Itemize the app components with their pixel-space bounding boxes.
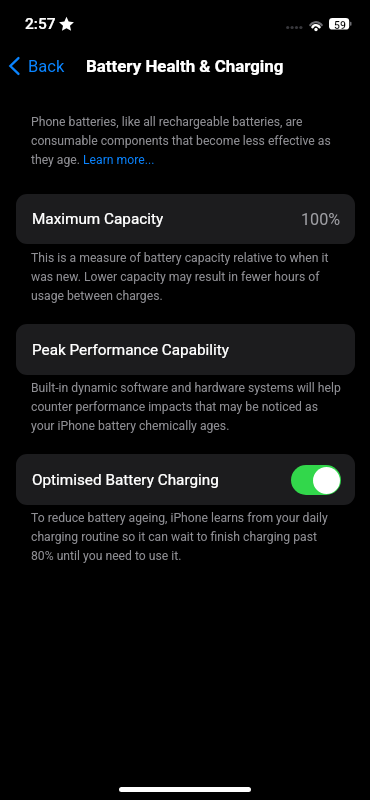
button[interactable]: Maximum Capacity <box>16 194 355 244</box>
staticText: Built-in dynamic software and hardware s… <box>31 377 342 434</box>
staticText: This is a measure of battery capacity re… <box>31 247 342 304</box>
staticText: Battery Health & Charging <box>86 56 284 76</box>
staticText: Optimised Battery Charging <box>32 471 219 489</box>
staticText: 2:57 <box>25 15 56 33</box>
button[interactable]: Back <box>3 49 71 83</box>
staticText: 100% <box>301 210 341 229</box>
staticText: Peak Performance Capability <box>32 341 229 359</box>
button[interactable]: Optimised Battery Charging toggle <box>291 465 341 495</box>
staticText: Maximum Capacity <box>32 210 164 228</box>
staticText: Phone batteries, like all rechargeable b… <box>31 111 342 168</box>
button[interactable]: Optimised Battery Charging <box>16 454 355 505</box>
staticText: Back <box>28 57 65 76</box>
staticText: To reduce battery ageing, iPhone learns … <box>31 507 342 564</box>
staticText: 59 <box>334 19 346 29</box>
button[interactable]: Peak Performance Capability <box>16 324 355 375</box>
